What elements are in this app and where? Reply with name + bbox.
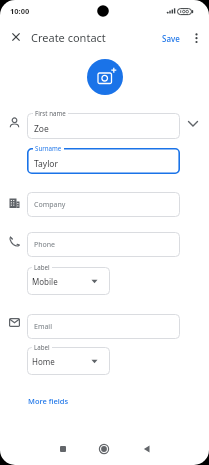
button[interactable] bbox=[191, 31, 202, 45]
staticText: Home bbox=[32, 356, 55, 367]
staticText: Email bbox=[34, 322, 52, 332]
staticText: Save bbox=[162, 33, 180, 44]
button[interactable] bbox=[8, 29, 24, 45]
button[interactable] bbox=[139, 441, 155, 457]
staticText: Zoe bbox=[34, 123, 49, 135]
staticText: Surname bbox=[35, 144, 62, 152]
staticText: More fields bbox=[28, 396, 69, 406]
button[interactable]: Company bbox=[27, 192, 180, 217]
button[interactable] bbox=[87, 59, 123, 95]
button[interactable]: Save bbox=[162, 33, 180, 44]
staticText: Phone bbox=[34, 240, 56, 250]
button[interactable] bbox=[55, 441, 71, 457]
button[interactable]: More fields bbox=[28, 396, 69, 406]
button[interactable]: Taylor bbox=[27, 148, 180, 174]
staticText: Company bbox=[34, 200, 66, 210]
staticText: Create contact bbox=[31, 30, 106, 45]
button[interactable] bbox=[186, 117, 200, 131]
staticText: 10:00 bbox=[10, 6, 30, 16]
button[interactable]: Home bbox=[27, 347, 110, 375]
staticText: Label bbox=[34, 343, 50, 351]
button[interactable] bbox=[96, 441, 112, 457]
button[interactable]: Phone bbox=[27, 232, 180, 257]
button[interactable]: Email bbox=[27, 314, 180, 339]
button[interactable]: Zoe bbox=[27, 113, 180, 139]
staticText: First name bbox=[35, 109, 66, 117]
staticText: Taylor bbox=[34, 158, 58, 170]
staticText: Mobile bbox=[32, 276, 58, 287]
button[interactable]: Mobile bbox=[27, 267, 110, 295]
staticText: Label bbox=[34, 263, 50, 271]
